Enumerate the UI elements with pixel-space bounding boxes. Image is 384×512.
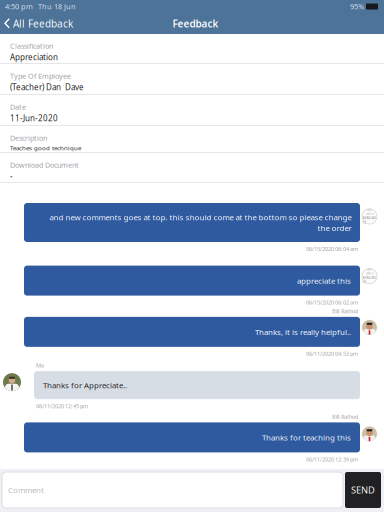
staticText: SEND bbox=[351, 484, 375, 496]
staticText: Thu 18 Jun bbox=[38, 1, 76, 11]
staticText: Description bbox=[10, 133, 47, 143]
staticText: 06/11/2020 12:45 pm bbox=[36, 402, 88, 410]
staticText: AVAILABLE bbox=[362, 216, 376, 224]
staticText: Type Of Employee bbox=[10, 71, 71, 81]
staticText: Bill Rathod bbox=[332, 413, 358, 420]
staticText: Appreciation bbox=[10, 52, 58, 63]
staticText: and new comments goes at top. this shoul… bbox=[49, 212, 351, 233]
staticText: 06/15/2020 06:02 am bbox=[306, 299, 358, 306]
staticText: 11-Jun-2020 bbox=[10, 113, 58, 124]
staticText: 06/11/2020 04:52 pm bbox=[306, 350, 358, 357]
staticText: IMAGE bbox=[365, 212, 373, 216]
button[interactable]: All Feedback bbox=[0, 13, 73, 34]
staticText: 06/11/2020 12:39 pm bbox=[306, 455, 358, 463]
staticText: Feedback bbox=[172, 17, 218, 30]
staticText: 06/15/2020 06:04 am bbox=[306, 245, 358, 253]
staticText: Download Document bbox=[10, 160, 79, 170]
staticText: All Feedback bbox=[13, 17, 73, 30]
staticText: Me bbox=[36, 361, 44, 369]
button[interactable]: Comment bbox=[2, 472, 343, 508]
staticText: Classification bbox=[10, 41, 53, 51]
staticText: Teaches good technique bbox=[10, 144, 81, 152]
staticText: NO bbox=[367, 268, 371, 272]
staticText: appreciate this bbox=[297, 275, 351, 286]
staticText: 4:50 pm bbox=[5, 1, 33, 11]
staticText: Comment bbox=[8, 485, 44, 495]
staticText: (Teacher) Dan Dave bbox=[10, 82, 84, 93]
staticText: Thanks for teaching this bbox=[262, 432, 351, 443]
staticText: Thanks for Appreciate.. bbox=[43, 380, 127, 390]
staticText: 95% bbox=[350, 1, 364, 11]
staticText: Bill Rathod bbox=[332, 307, 358, 315]
staticText: NO bbox=[367, 209, 371, 212]
staticText: AVAILABLE bbox=[362, 275, 376, 284]
button[interactable]: SEND bbox=[345, 472, 381, 508]
staticText: IMAGE bbox=[365, 272, 373, 275]
staticText: Thanks, it is really helpful.. bbox=[255, 326, 351, 337]
staticText: Date bbox=[10, 102, 26, 112]
staticText: - bbox=[10, 171, 13, 182]
